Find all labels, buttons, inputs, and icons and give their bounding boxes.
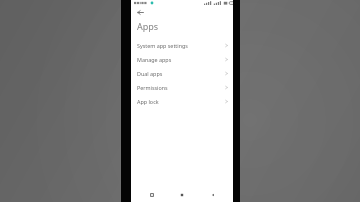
button[interactable]: Home	[172, 188, 192, 202]
staticText: Permissions	[137, 84, 225, 91]
staticText: System app settings	[137, 42, 225, 49]
staticText: Manage apps	[137, 56, 225, 63]
button[interactable]: Back	[131, 6, 233, 19]
button[interactable]: Manage apps	[131, 52, 233, 66]
button[interactable]: Permissions	[131, 80, 233, 94]
button[interactable]: Dual apps	[131, 66, 233, 80]
button[interactable]: Recents	[142, 188, 162, 202]
button[interactable]: Back	[203, 188, 223, 202]
button[interactable]: App lock	[131, 94, 233, 108]
staticText: Apps	[137, 20, 159, 32]
button[interactable]: System app settings	[131, 38, 233, 52]
staticText: App lock	[137, 98, 225, 105]
staticText: Dual apps	[137, 70, 225, 77]
